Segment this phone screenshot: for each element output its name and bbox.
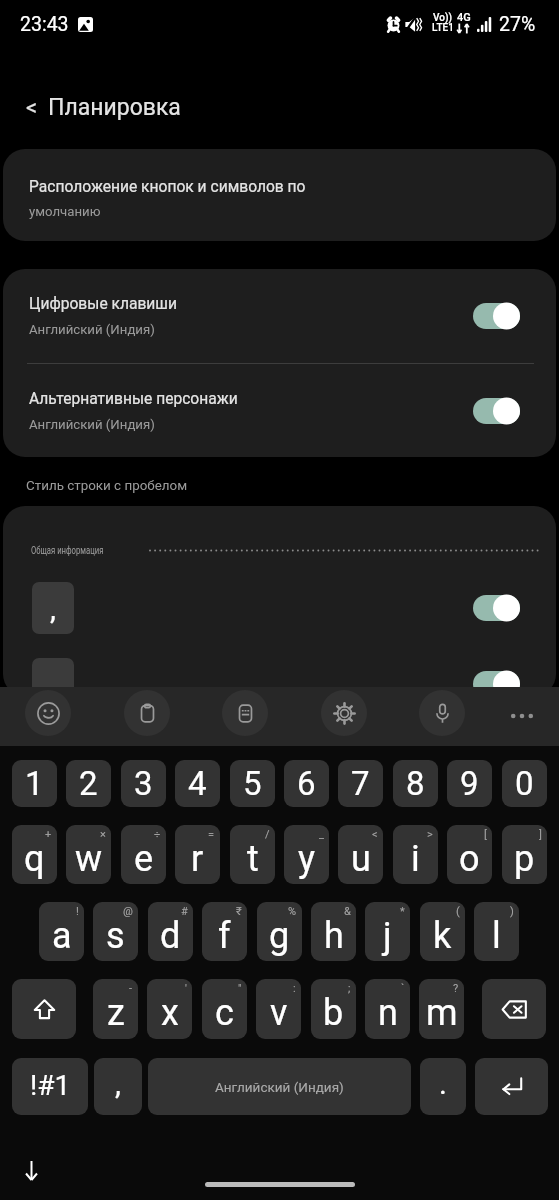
button[interactable]: y [284, 825, 329, 884]
staticText: % [288, 905, 297, 918]
button[interactable]: j [365, 902, 410, 961]
button[interactable]: a [39, 902, 84, 961]
button[interactable]: Английский (Индия) [148, 1058, 411, 1115]
button[interactable]: 3 [121, 760, 166, 807]
button[interactable]: , [94, 1058, 142, 1115]
staticText: b [323, 992, 344, 1034]
button[interactable]: z [93, 979, 138, 1039]
button[interactable]: . [420, 1058, 466, 1115]
staticText: " [238, 982, 242, 995]
button[interactable]: Clipboard [124, 690, 170, 736]
staticText: , [50, 591, 56, 626]
button[interactable]: b [311, 979, 356, 1039]
button[interactable]: Toggle [473, 301, 523, 331]
staticText: d [160, 915, 181, 957]
button[interactable]: Расположение кнопок и символов по [3, 149, 556, 241]
staticText: !#1 [30, 1069, 71, 1102]
button[interactable]: Альтернативные персонажи [3, 364, 556, 457]
staticText: j [383, 915, 392, 957]
button[interactable]: 1 [12, 760, 57, 807]
button[interactable]: u [338, 825, 383, 884]
staticText: n [378, 992, 398, 1034]
staticText: 9 [460, 764, 479, 803]
button[interactable]: More options [504, 701, 540, 731]
button[interactable]: m [419, 979, 464, 1039]
button[interactable]: 5 [230, 760, 275, 807]
button[interactable]: Back [0, 84, 559, 130]
staticText: q [24, 838, 45, 880]
staticText: Общая информация [31, 543, 104, 556]
staticText: [ [484, 828, 487, 841]
staticText: i [411, 838, 420, 880]
button[interactable]: r [175, 825, 220, 884]
staticText: × [100, 828, 106, 841]
staticText: & [344, 905, 351, 918]
staticText: k [433, 915, 452, 957]
staticText: : [293, 982, 296, 995]
button[interactable]: !#1 [12, 1058, 88, 1115]
staticText: 7 [351, 764, 370, 803]
staticText: @ [123, 905, 133, 918]
staticText: h [324, 915, 344, 957]
button[interactable]: Toggle [473, 593, 523, 623]
button[interactable]: enter [475, 1058, 548, 1115]
button[interactable]: shift [12, 979, 76, 1039]
button[interactable]: 2 [66, 760, 111, 807]
staticText: 0 [515, 764, 534, 803]
button[interactable]: Emoji [25, 690, 71, 736]
button[interactable]: p [502, 825, 547, 884]
staticText: > [427, 828, 433, 841]
button[interactable]: 6 [284, 760, 329, 807]
button[interactable]: n [365, 979, 410, 1039]
button[interactable]: 7 [338, 760, 383, 807]
staticText: Альтернативные персонажи [29, 390, 238, 408]
button[interactable]: x [147, 979, 192, 1039]
staticText: ; [348, 982, 351, 995]
button[interactable]: Voice input [419, 690, 465, 736]
staticText: c [215, 992, 234, 1034]
button[interactable]: e [121, 825, 166, 884]
button[interactable]: f [202, 902, 247, 961]
button[interactable]: Settings [321, 690, 367, 736]
button[interactable]: w [66, 825, 111, 884]
button[interactable]: q [12, 825, 57, 884]
button[interactable]: , [32, 582, 74, 634]
staticText: - [129, 982, 133, 995]
button[interactable]: d [148, 902, 193, 961]
button[interactable]: c [202, 979, 247, 1039]
staticText: 4G [457, 11, 471, 24]
staticText: + [45, 828, 52, 841]
staticText: m [426, 992, 458, 1034]
button[interactable]: s [93, 902, 138, 961]
button[interactable]: backspace [482, 979, 546, 1039]
button[interactable]: 0 [502, 760, 547, 807]
button[interactable]: 9 [447, 760, 492, 807]
staticText: v [270, 992, 288, 1034]
button[interactable]: Space style option [32, 658, 74, 696]
button[interactable]: 4 [175, 760, 220, 807]
button[interactable]: v [256, 979, 301, 1039]
button[interactable]: o [447, 825, 492, 884]
staticText: / [265, 828, 270, 841]
button[interactable]: t [230, 825, 275, 884]
button[interactable]: 8 [393, 760, 438, 807]
staticText: t [247, 838, 259, 880]
button[interactable]: Toggle [473, 396, 523, 426]
button[interactable]: h [311, 902, 356, 961]
button[interactable]: l [474, 902, 519, 961]
staticText: ÷ [154, 828, 161, 841]
staticText: ! [76, 905, 79, 918]
staticText: ₹ [236, 905, 242, 918]
staticText: ` [401, 982, 405, 995]
button[interactable]: k [420, 902, 465, 961]
staticText: # [181, 905, 188, 918]
staticText: < [372, 828, 378, 841]
button[interactable]: g [257, 902, 302, 961]
button[interactable]: Toggle [473, 669, 523, 696]
button[interactable]: Hide keyboard [16, 1155, 46, 1185]
button[interactable]: Цифровые клавиши [3, 269, 556, 363]
button[interactable]: i [393, 825, 438, 884]
staticText: ' [185, 982, 187, 995]
button[interactable]: Text editing [222, 690, 268, 736]
staticText: Английский (Индия) [215, 1079, 344, 1095]
